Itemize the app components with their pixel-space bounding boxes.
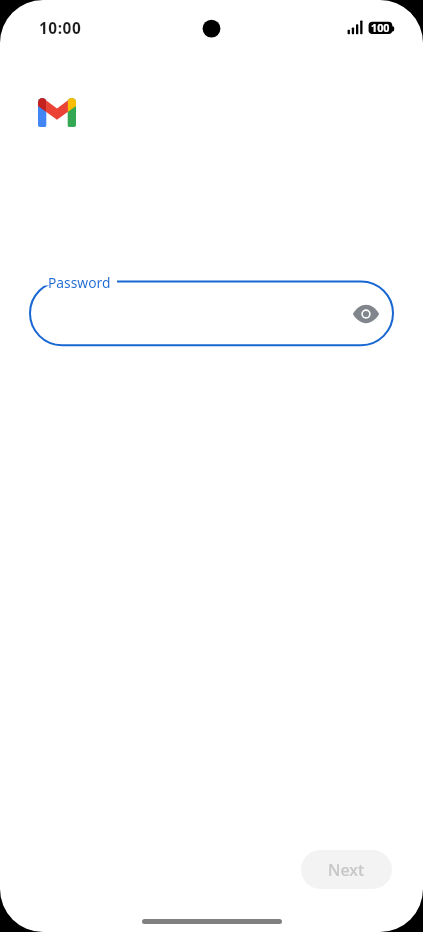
staticText: 100 xyxy=(371,20,390,32)
button[interactable]: Password xyxy=(30,273,393,349)
button[interactable]: Next xyxy=(301,850,392,889)
button[interactable]: Show password xyxy=(344,292,388,336)
staticText: 10:00 xyxy=(39,18,82,39)
staticText: Next xyxy=(328,859,365,881)
staticText: Password xyxy=(48,273,111,292)
